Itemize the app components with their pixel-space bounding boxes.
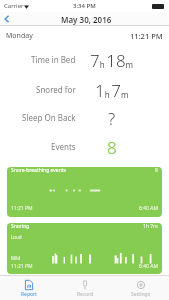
staticText: Record bbox=[77, 291, 94, 298]
staticText: Time in Bed bbox=[31, 54, 76, 65]
staticText: 3:34 PM bbox=[73, 2, 96, 10]
staticText: 7h 18m bbox=[90, 49, 134, 69]
staticText: 11:21 PM bbox=[130, 31, 163, 41]
staticText: 8 bbox=[107, 136, 117, 156]
staticText: 11:21 PM bbox=[11, 205, 33, 212]
staticText: 11:21 PM bbox=[11, 263, 33, 270]
button[interactable]: Report bbox=[0, 276, 57, 300]
staticText: Mild bbox=[11, 255, 21, 261]
staticText: 1h 7m bbox=[95, 79, 129, 99]
staticText: Carrier bbox=[4, 2, 24, 10]
staticText: Snored for bbox=[36, 84, 76, 95]
staticText: 6:40 AM bbox=[139, 205, 158, 212]
staticText: 1h 7m bbox=[143, 223, 158, 230]
staticText: Monday bbox=[6, 31, 33, 41]
staticText: Events bbox=[51, 141, 76, 152]
button[interactable]: Snoring bbox=[7, 223, 162, 274]
staticText: 8 bbox=[155, 167, 158, 174]
button[interactable]: Snore-breathing events bbox=[7, 167, 162, 217]
staticText: Loud bbox=[11, 234, 22, 240]
staticText: Report bbox=[21, 291, 37, 298]
button[interactable]: Record bbox=[57, 276, 113, 300]
staticText: May 30, 2016 bbox=[61, 14, 112, 25]
staticText: 6:40 AM bbox=[139, 263, 158, 270]
button[interactable]: Settings bbox=[113, 276, 169, 300]
button[interactable]: Back bbox=[0, 12, 14, 26]
staticText: Sleep On Back bbox=[22, 112, 76, 123]
staticText: Snore-breathing events bbox=[11, 167, 66, 174]
staticText: Snoring bbox=[11, 223, 30, 230]
staticText: Settings bbox=[131, 291, 151, 298]
staticText: ? bbox=[108, 107, 116, 127]
